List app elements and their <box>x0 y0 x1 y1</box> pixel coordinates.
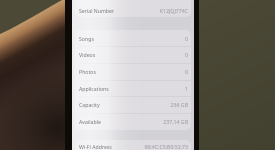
button[interactable] <box>72 114 194 129</box>
button[interactable]: Wi-Fi Address <box>72 139 194 150</box>
staticText: Serial Number <box>79 7 115 14</box>
button[interactable] <box>72 3 194 18</box>
staticText: 0 <box>185 51 188 58</box>
staticText: 1 <box>185 85 188 92</box>
button[interactable]: Serial Number <box>72 3 194 18</box>
staticText: Wi-Fi Address <box>79 143 112 150</box>
button[interactable] <box>72 81 194 96</box>
button[interactable] <box>72 97 194 112</box>
staticText: 256 GB <box>170 101 188 108</box>
staticText: Videos <box>79 51 96 58</box>
staticText: Songs <box>79 35 94 42</box>
staticText: 0 <box>185 35 188 42</box>
staticText: Applications <box>79 85 109 92</box>
staticText: 237.14 GB <box>163 118 188 125</box>
staticText: Available <box>79 118 101 125</box>
staticText: Capacity <box>79 101 100 108</box>
staticText: 0 <box>185 68 188 75</box>
button[interactable]: Videos <box>72 47 194 62</box>
button[interactable]: Photos <box>72 64 194 79</box>
staticText: 90:4C:C5:B0:52:73 <box>144 143 188 150</box>
button[interactable] <box>72 64 194 79</box>
button[interactable]: Applications <box>72 81 194 96</box>
button[interactable]: Songs <box>72 31 194 46</box>
staticText: Photos <box>79 68 96 75</box>
button[interactable] <box>72 139 194 150</box>
button[interactable]: Available <box>72 114 194 129</box>
staticText: K12JQJ774C <box>159 7 188 14</box>
button[interactable]: Capacity <box>72 97 194 112</box>
button[interactable] <box>72 31 194 46</box>
button[interactable] <box>72 47 194 62</box>
